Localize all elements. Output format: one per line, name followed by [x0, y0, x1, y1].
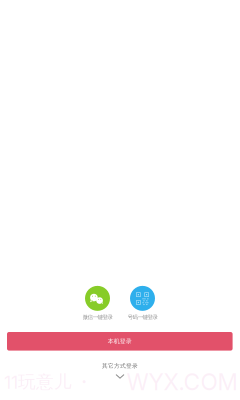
button[interactable]: 微信一键登录 [75, 286, 120, 321]
button[interactable]: 号码一键登录 [120, 286, 165, 321]
staticText: 11玩意儿 [4, 371, 72, 393]
staticText: 其它方式登录 [102, 362, 138, 369]
button[interactable]: 其它方式登录 [102, 362, 138, 379]
staticText: 本机登录 [108, 337, 132, 345]
button[interactable]: 本机登录 [7, 332, 233, 351]
staticText: 微信一键登录 [82, 314, 112, 321]
staticText: 号码一键登录 [127, 314, 157, 321]
staticText: WYX.COM [126, 368, 237, 396]
